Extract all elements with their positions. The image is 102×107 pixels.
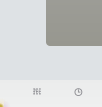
button[interactable]: Library (26, 80, 48, 102)
button[interactable]: Recents (67, 81, 89, 103)
